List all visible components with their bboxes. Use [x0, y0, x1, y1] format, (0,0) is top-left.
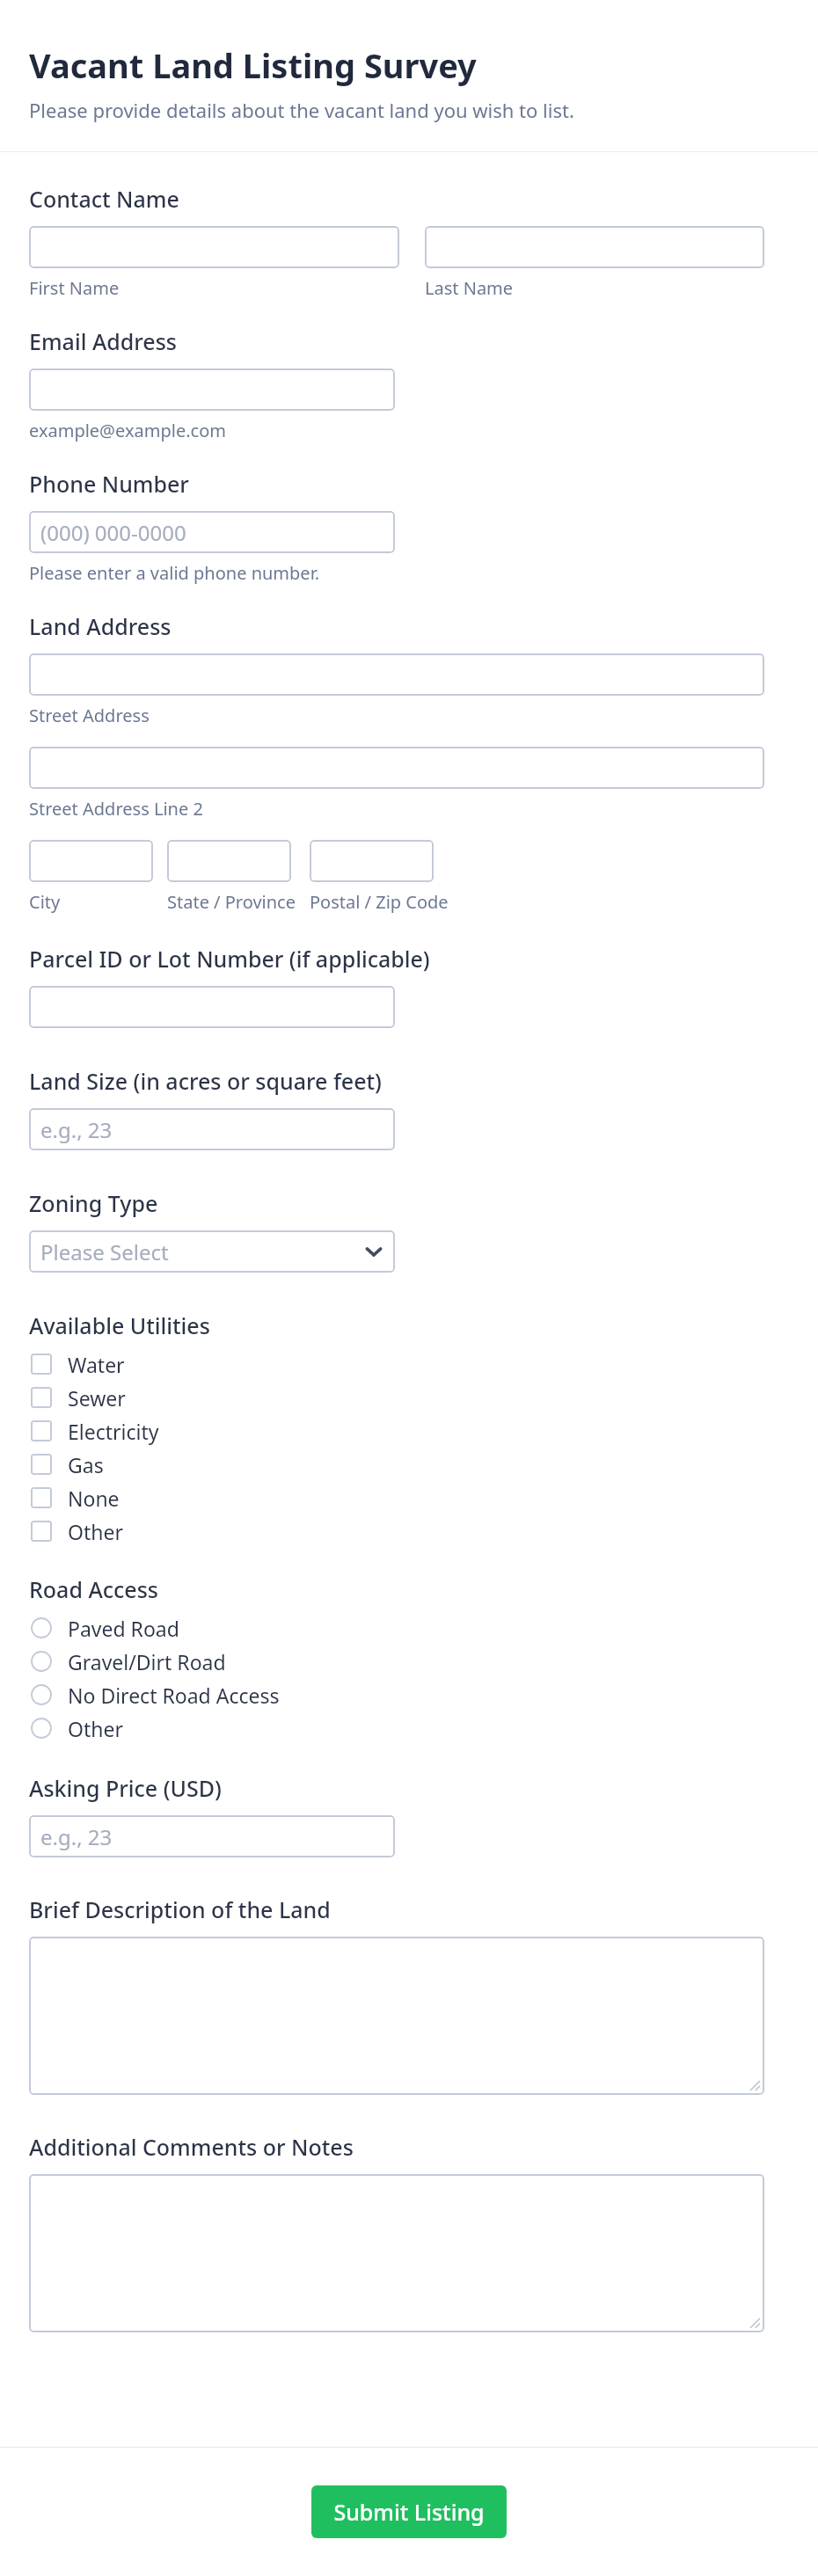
- staticText: Gas: [68, 1451, 104, 1478]
- staticText: First Name: [29, 276, 120, 300]
- button[interactable]: [29, 369, 395, 411]
- button[interactable]: [425, 226, 764, 268]
- button[interactable]: Submit Listing: [311, 2485, 507, 2538]
- staticText: Street Address: [29, 704, 150, 727]
- staticText: Vacant Land Listing Survey: [29, 42, 477, 88]
- staticText: Contact Name: [29, 184, 179, 214]
- button[interactable]: [29, 986, 395, 1028]
- staticText: Road Access: [29, 1574, 158, 1604]
- button[interactable]: (000) 000-0000: [29, 511, 395, 553]
- staticText: Brief Description of the Land: [29, 1894, 331, 1924]
- button[interactable]: Gravel/Dirt Road: [29, 1645, 764, 1678]
- button[interactable]: Sewer: [29, 1381, 764, 1414]
- staticText: Please Select: [40, 1237, 364, 1266]
- button[interactable]: e.g., 23: [29, 1108, 395, 1150]
- staticText: Other: [68, 1518, 123, 1545]
- staticText: Asking Price (USD): [29, 1773, 222, 1803]
- staticText: Gravel/Dirt Road: [68, 1648, 226, 1675]
- button[interactable]: [29, 747, 764, 789]
- staticText: State / Province: [167, 890, 296, 914]
- button[interactable]: None: [29, 1481, 764, 1514]
- staticText: e.g., 23: [40, 1115, 383, 1144]
- button[interactable]: Please Select: [29, 1230, 395, 1273]
- staticText: None: [68, 1485, 120, 1512]
- button[interactable]: [29, 2174, 764, 2332]
- staticText: Land Size (in acres or square feet): [29, 1066, 382, 1096]
- button[interactable]: Gas: [29, 1448, 764, 1481]
- other: Open dropdown: [364, 1242, 383, 1261]
- button[interactable]: Other: [29, 1514, 764, 1548]
- staticText: Email Address: [29, 326, 178, 356]
- staticText: Electricity: [68, 1418, 159, 1445]
- staticText: Phone Number: [29, 469, 189, 499]
- staticText: Additional Comments or Notes: [29, 2132, 354, 2162]
- staticText: City: [29, 890, 61, 914]
- staticText: Zoning Type: [29, 1188, 158, 1218]
- staticText: Water: [68, 1351, 125, 1378]
- button[interactable]: No Direct Road Access: [29, 1678, 764, 1711]
- staticText: Please provide details about the vacant …: [29, 97, 574, 123]
- button[interactable]: Water: [29, 1347, 764, 1381]
- staticText: Postal / Zip Code: [310, 890, 449, 914]
- button[interactable]: Electricity: [29, 1414, 764, 1448]
- staticText: Please enter a valid phone number.: [29, 561, 320, 585]
- button[interactable]: e.g., 23: [29, 1815, 395, 1857]
- staticText: Street Address Line 2: [29, 797, 203, 821]
- staticText: Available Utilities: [29, 1310, 210, 1340]
- button[interactable]: Paved Road: [29, 1611, 764, 1645]
- button[interactable]: [167, 840, 291, 882]
- staticText: Land Address: [29, 611, 172, 641]
- button[interactable]: [29, 653, 764, 696]
- staticText: Last Name: [425, 276, 514, 300]
- staticText: e.g., 23: [40, 1822, 383, 1851]
- button[interactable]: [29, 226, 399, 268]
- staticText: Submit Listing: [333, 2497, 485, 2527]
- staticText: No Direct Road Access: [68, 1682, 280, 1709]
- staticText: Sewer: [68, 1384, 126, 1412]
- button[interactable]: [29, 840, 153, 882]
- button[interactable]: [310, 840, 434, 882]
- staticText: example@example.com: [29, 419, 226, 442]
- button[interactable]: Other: [29, 1711, 764, 1745]
- button[interactable]: [29, 1937, 764, 2095]
- staticText: Paved Road: [68, 1615, 179, 1642]
- staticText: (000) 000-0000: [40, 518, 383, 547]
- staticText: Parcel ID or Lot Number (if applicable): [29, 944, 430, 974]
- staticText: Other: [68, 1715, 123, 1742]
